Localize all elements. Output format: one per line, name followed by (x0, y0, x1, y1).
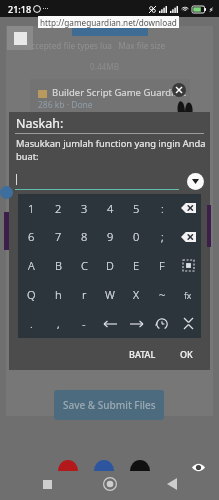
button[interactable]: 6 (18, 222, 45, 251)
button[interactable]: fx (175, 280, 201, 309)
staticText: A (28, 258, 35, 273)
staticText: E (133, 258, 140, 273)
staticText: 1 (28, 201, 35, 216)
button[interactable]: W (97, 280, 123, 309)
button[interactable]: 7 (45, 222, 71, 251)
button[interactable]: B (45, 251, 71, 280)
staticText: W (105, 287, 115, 302)
staticText: 2 (55, 201, 62, 216)
button[interactable]: 3 (71, 194, 97, 222)
staticText: D (106, 258, 114, 273)
staticText: ; (161, 229, 164, 244)
staticText: 286 kb · Done (38, 99, 93, 111)
staticText: : (161, 201, 164, 216)
staticText: Accepted file types lua Max file size (26, 40, 166, 51)
staticText: 21:18 (8, 3, 32, 15)
staticText: F (159, 258, 165, 273)
button[interactable]: : (149, 194, 175, 222)
staticText: Naskah: (16, 115, 64, 132)
staticText: B (55, 258, 62, 273)
button[interactable]: Recents (32, 469, 62, 499)
button[interactable]: E (123, 251, 149, 280)
button[interactable]: Right (123, 309, 149, 338)
button[interactable]: 0 (123, 222, 149, 251)
button[interactable]: History (149, 309, 175, 338)
staticText: ~ (159, 287, 166, 302)
staticText: 9 (107, 229, 114, 244)
staticText: 4 (107, 201, 114, 216)
button[interactable]: 9 (97, 222, 123, 251)
button[interactable]: C (71, 251, 97, 280)
button[interactable]: ~ (149, 280, 175, 309)
staticText: 7 (55, 229, 62, 244)
button[interactable]: Backspace (175, 194, 201, 222)
button[interactable]: h (45, 280, 71, 309)
button[interactable]: Save & Submit Files (54, 390, 164, 420)
staticText: . (30, 316, 33, 331)
button[interactable]: . (18, 309, 45, 338)
button[interactable]: r (71, 280, 97, 309)
button[interactable]: Left (97, 309, 123, 338)
staticText: 6 (28, 229, 35, 244)
staticText: , (57, 316, 60, 331)
staticText: http://gameguardian.net/download (40, 17, 177, 28)
button[interactable]: Preview (192, 461, 205, 474)
button[interactable]: 8 (71, 222, 97, 251)
button[interactable]: Close (172, 83, 186, 97)
staticText: BATAL (129, 348, 156, 360)
staticText: 0 (133, 229, 140, 244)
button[interactable]: 1 (18, 194, 45, 222)
staticText: X (133, 287, 140, 302)
button[interactable]: , (45, 309, 71, 338)
button[interactable]: Home (95, 469, 125, 499)
button[interactable]: Collapse (175, 309, 201, 338)
button[interactable]: - (71, 309, 97, 338)
staticText: 3 (81, 201, 88, 216)
staticText: r (82, 287, 87, 302)
staticText: Builder Script Game Guardia… (52, 86, 187, 99)
button[interactable]: X (123, 280, 149, 309)
staticText: C (81, 258, 88, 273)
button[interactable]: Back (157, 469, 187, 499)
button[interactable]: OK (174, 345, 199, 363)
button[interactable]: D (97, 251, 123, 280)
button[interactable]: Backspace (175, 222, 201, 251)
button[interactable]: A (18, 251, 45, 280)
button[interactable]: Q (18, 280, 45, 309)
staticText: fx (184, 289, 192, 301)
button[interactable]: ; (149, 222, 175, 251)
button[interactable]: 2 (45, 194, 71, 222)
staticText: OK (180, 348, 193, 360)
button[interactable]: 5 (123, 194, 149, 222)
staticText: 5 (133, 201, 140, 216)
staticText: - (82, 316, 86, 331)
button[interactable]: F (149, 251, 175, 280)
button[interactable]: BATAL (123, 345, 162, 363)
staticText: Masukkan jumlah function yang ingin Anda… (16, 137, 206, 163)
staticText: Q (27, 287, 36, 302)
button[interactable]: Select (175, 251, 201, 280)
staticText: ⚡ (209, 6, 214, 13)
staticText: h (55, 287, 62, 302)
staticText: Save & Submit Files (63, 398, 156, 412)
staticText: 8 (81, 229, 88, 244)
button[interactable]: Show options (187, 173, 204, 190)
staticText: 0.44MB (90, 61, 119, 72)
button[interactable] (15, 172, 179, 190)
button[interactable]: 4 (97, 194, 123, 222)
